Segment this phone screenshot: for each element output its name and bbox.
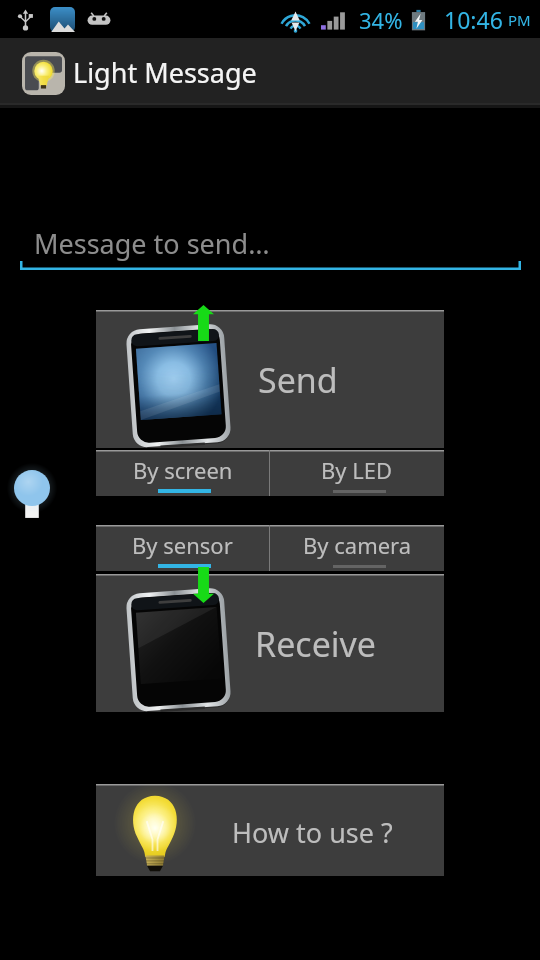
staticText: How to use ? — [232, 814, 393, 851]
staticText: Send — [258, 357, 338, 403]
button[interactable]: By sensor — [96, 525, 269, 571]
staticText: By screen — [133, 455, 233, 485]
button[interactable]: Message to send… — [20, 212, 521, 270]
button[interactable]: By camera — [270, 525, 444, 571]
staticText: By LED — [321, 455, 393, 485]
staticText: Message to send… — [34, 225, 270, 262]
staticText: By sensor — [132, 530, 233, 560]
button[interactable]: Light Message app icon — [22, 52, 65, 95]
button[interactable]: By LED — [270, 450, 444, 496]
staticText: Receive — [255, 621, 377, 667]
staticText: By camera — [303, 530, 412, 560]
staticText: PM — [508, 10, 531, 30]
staticText: Light Message — [73, 54, 257, 91]
button[interactable]: Receive — [96, 574, 444, 712]
button[interactable]: By screen — [96, 450, 269, 496]
staticText: 10:46 — [444, 4, 503, 35]
other: Light status — [12, 469, 52, 524]
staticText: 34% — [359, 5, 403, 35]
button[interactable]: How to use ? — [96, 784, 444, 876]
button[interactable]: Send — [96, 310, 444, 448]
